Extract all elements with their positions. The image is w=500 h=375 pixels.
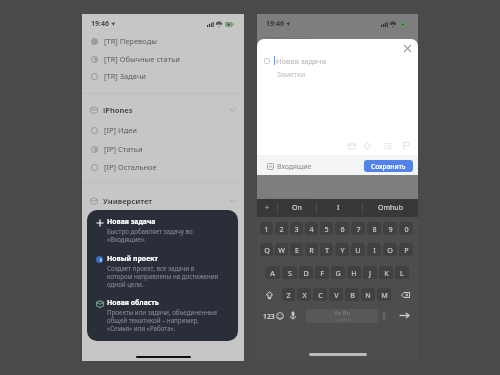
button[interactable]: [IP] Остальное [82,158,244,176]
staticText: P [404,245,409,255]
staticText: U [355,245,361,255]
button[interactable]: I [316,199,361,217]
button[interactable]: 7 [351,222,365,235]
staticText: C [318,290,323,300]
button[interactable]: Close [402,43,413,54]
button[interactable]: En Ru [306,309,378,323]
button[interactable]: Q [260,243,273,256]
button[interactable]: Новый проект [87,254,238,288]
staticText: + [265,203,270,213]
button[interactable]: Входящие [267,160,312,172]
button[interactable]: Return [399,311,410,320]
staticText: G [335,268,341,278]
button[interactable]: J [363,266,377,279]
staticText: S [288,268,292,278]
button[interactable]: 9 [383,222,397,235]
button[interactable]: [IP] Статьи [82,140,244,158]
button[interactable]: T [320,243,333,256]
button[interactable]: Новая задача [87,210,238,341]
staticText: Новая задача [107,217,156,226]
button[interactable]: [IP] Идеи [82,121,244,139]
button[interactable]: [TR] Обычные статьи [82,50,244,68]
button[interactable]: Flag [400,140,412,152]
staticText: Y [340,245,345,255]
staticText: пробел [335,317,350,323]
staticText: [IP] Остальное [104,162,157,172]
button[interactable]: 2 [275,222,288,235]
staticText: Университет [103,196,153,206]
staticText: I [337,203,340,213]
button[interactable]: Checklist [382,140,394,152]
button[interactable]: W [275,243,288,256]
button[interactable]: 1 [260,222,273,235]
staticText: E [295,245,299,255]
staticText: «Входящие». [107,235,146,243]
staticText: 19:46 [266,19,284,29]
button[interactable]: Shift [262,288,276,301]
button[interactable]: Новая область [87,298,238,332]
button[interactable]: G [331,266,345,279]
button[interactable]: K [379,266,393,279]
staticText: X [302,290,307,300]
button[interactable]: H [347,266,361,279]
button[interactable]: Omhub [362,199,418,217]
staticText: V [334,290,339,300]
staticText: Создает проект, все задачи в [107,264,195,272]
button[interactable]: Tag [361,140,373,152]
button[interactable]: N [361,288,375,301]
staticText: En Ru [335,309,350,317]
staticText: Z [286,290,291,300]
button[interactable]: Y [335,243,349,256]
button[interactable]: Dictate [290,311,296,320]
button[interactable]: [TR] Задачи [82,67,244,85]
button[interactable]: 8 [367,222,381,235]
button[interactable]: R [305,243,318,256]
button[interactable]: X [297,288,311,301]
button[interactable]: 0 [399,222,413,235]
button[interactable]: 6 [335,222,349,235]
button[interactable]: V [329,288,343,301]
button[interactable]: U [351,243,365,256]
button[interactable]: [TR] Переводы [82,32,244,50]
button[interactable]: 4 [305,222,318,235]
staticText: 7 [356,224,361,234]
button[interactable]: Университет [82,192,244,210]
staticText: Быстро добавляет задачу во [107,227,193,235]
staticText: Omhub [378,203,403,213]
button[interactable]: iPhones [82,101,244,119]
button[interactable]: B [345,288,359,301]
button[interactable]: Z [282,288,295,301]
button[interactable]: + [257,199,277,217]
button[interactable]: A [265,266,280,279]
button[interactable]: Backspace [398,288,413,301]
button[interactable]: S [282,266,297,279]
staticText: F [320,268,324,278]
button[interactable]: M [377,288,391,301]
button[interactable]: Сохранить [364,160,413,172]
button[interactable]: D [299,266,313,279]
button[interactable]: I [367,243,381,256]
staticText: R [309,245,314,255]
staticText: [IP] Идеи [104,125,137,135]
staticText: J [369,268,371,278]
button[interactable]: L [395,266,409,279]
button[interactable]: 5 [320,222,333,235]
button[interactable]: F [315,266,329,279]
staticText: котором направлены на достижения [107,272,219,280]
staticText: [TR] Обычные статьи [104,54,180,64]
staticText: общей тематикой – например, [107,316,200,324]
button[interactable]: P [399,243,413,256]
button[interactable]: Date [346,140,358,152]
button[interactable]: 3 [290,222,303,235]
button[interactable]: On [277,199,316,217]
staticText: Университет [267,194,317,204]
button[interactable]: 123 [263,312,275,321]
staticText: 8 [372,224,377,234]
button[interactable]: C [313,288,327,301]
button[interactable]: E [290,243,303,256]
button[interactable]: O [383,243,397,256]
button[interactable]: Globe [381,312,387,320]
button[interactable]: Новая задача [87,217,238,243]
button[interactable]: Emoji [276,312,284,320]
staticText: iPhones [103,105,133,115]
